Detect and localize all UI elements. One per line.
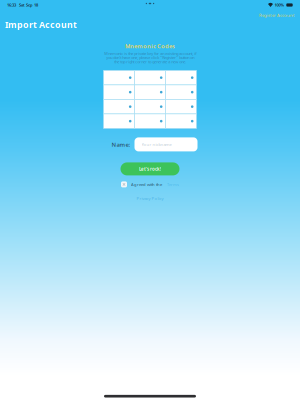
staticText: Agreed with the [131, 182, 162, 187]
staticText: 16:33 Sat Sep 18 [7, 2, 38, 8]
staticText: Mnemonic is the private key for an exist… [104, 51, 196, 64]
staticText: Privacy Policy [136, 195, 163, 201]
staticText: Name: [111, 140, 130, 148]
staticText: 100% [274, 2, 284, 8]
button[interactable]: Agree to terms [121, 181, 127, 187]
button[interactable]: Privacy Policy [132, 193, 167, 203]
button[interactable]: Register Account [256, 10, 298, 20]
staticText: Terms [167, 182, 179, 187]
staticText: Mnemonic Codes [125, 42, 175, 50]
staticText: Let's rock! [139, 166, 161, 172]
button[interactable]: Let's rock! [120, 162, 179, 175]
button[interactable]: Terms [162, 182, 179, 187]
staticText: Your nickname [141, 141, 171, 147]
staticText: Import Account [5, 18, 77, 30]
staticText: Register Account [259, 12, 295, 18]
